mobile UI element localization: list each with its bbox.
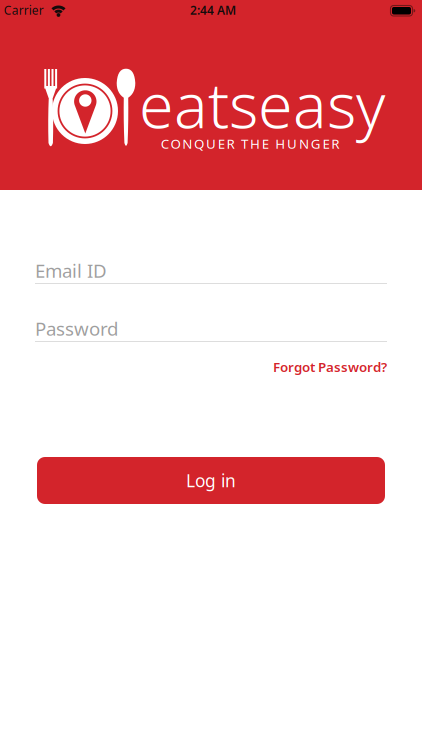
staticText: Email ID xyxy=(35,258,107,283)
staticText: CONQUER THE HUNGER xyxy=(161,135,339,152)
button[interactable]: Email ID xyxy=(35,243,387,285)
staticText: Carrier xyxy=(4,2,44,18)
staticText: Forgot Password? xyxy=(273,358,387,376)
button[interactable]: Password xyxy=(35,301,387,343)
staticText: Log in xyxy=(186,469,236,492)
button[interactable]: Forgot Password? xyxy=(273,358,387,376)
staticText: eatseasy xyxy=(139,62,385,146)
staticText: Password xyxy=(35,316,118,341)
staticText: 2:44 AM xyxy=(190,2,236,18)
button[interactable]: Log in xyxy=(37,457,385,504)
